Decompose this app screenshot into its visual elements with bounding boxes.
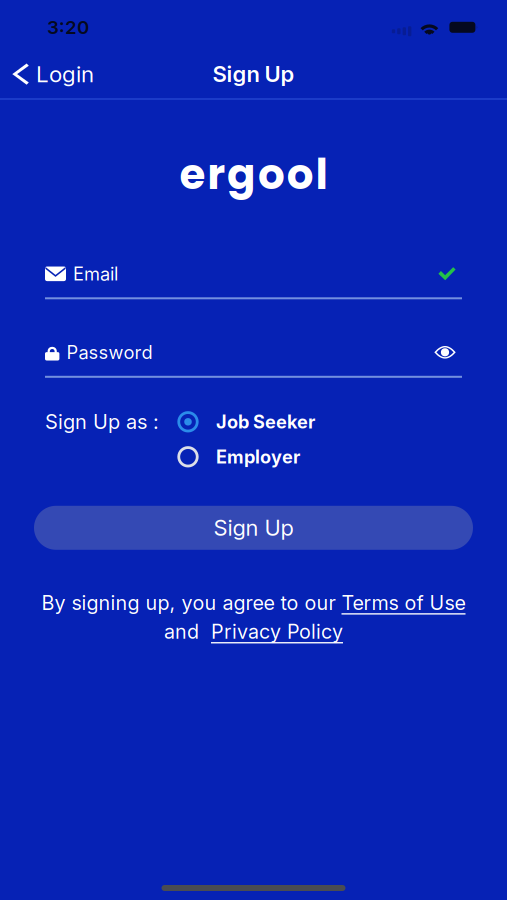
staticText: By signing up, you agree to our [41,591,341,615]
staticText: Terms of Use [341,591,465,615]
staticText: and [164,620,211,644]
staticText: Sign Up [213,514,293,541]
button[interactable]: Privacy Policy [211,620,343,644]
button[interactable]: Show password [434,345,456,359]
staticText: Job Seeker [216,411,315,433]
button[interactable]: Job Seeker [176,410,326,434]
staticText: ergool [179,145,327,204]
button[interactable]: Terms of Use [341,591,465,615]
button[interactable]: Employer [176,445,326,469]
staticText: Employer [216,446,300,468]
button[interactable]: Login [0,51,104,97]
staticText: 3:20 [47,16,89,39]
button[interactable]: Sign Up [34,506,473,550]
staticText: Sign Up [212,61,294,87]
staticText: Privacy Policy [211,620,343,644]
staticText: Login [36,60,94,87]
staticText: Password [66,341,152,363]
staticText: Email [73,263,118,285]
staticText: Sign Up as : [45,410,159,434]
